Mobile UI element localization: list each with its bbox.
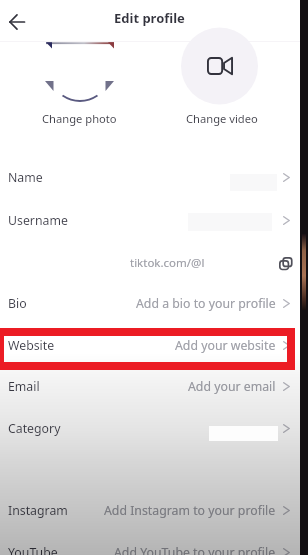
button[interactable]: Copy profile link [279, 257, 292, 270]
staticText: Category [8, 420, 61, 437]
button[interactable]: tiktok.com/@l [0, 245, 308, 281]
staticText: Email [8, 378, 40, 395]
staticText: tiktok.com/@l [130, 255, 205, 271]
staticText: Add your website [175, 337, 276, 354]
button[interactable]: Change photo [40, 36, 120, 104]
button[interactable]: Instagram [0, 489, 308, 531]
staticText: Name [8, 169, 43, 186]
button[interactable]: Bio [0, 282, 308, 324]
button[interactable]: Back [3, 8, 31, 36]
staticText: Username [8, 212, 68, 229]
button[interactable]: YouTube [0, 531, 308, 555]
button[interactable]: Name [0, 156, 308, 198]
staticText: Bio [8, 295, 27, 312]
staticText: Edit profile [114, 9, 185, 27]
staticText: Instagram [8, 502, 68, 519]
staticText: Change photo [42, 111, 117, 126]
button[interactable]: Website [0, 324, 308, 366]
staticText: Add a bio to your profile [136, 295, 276, 312]
staticText: Website [8, 337, 55, 354]
button[interactable]: Email [0, 365, 308, 407]
button[interactable]: Change video [181, 42, 258, 105]
staticText: YouTube [8, 544, 58, 555]
staticText: Add YouTube to your profile [114, 544, 276, 555]
button[interactable]: Category [0, 407, 308, 449]
staticText: Change video [186, 111, 258, 126]
staticText: Add Instagram to your profile [104, 502, 276, 519]
button[interactable]: Username [0, 199, 308, 241]
staticText: Add your email [188, 378, 276, 395]
